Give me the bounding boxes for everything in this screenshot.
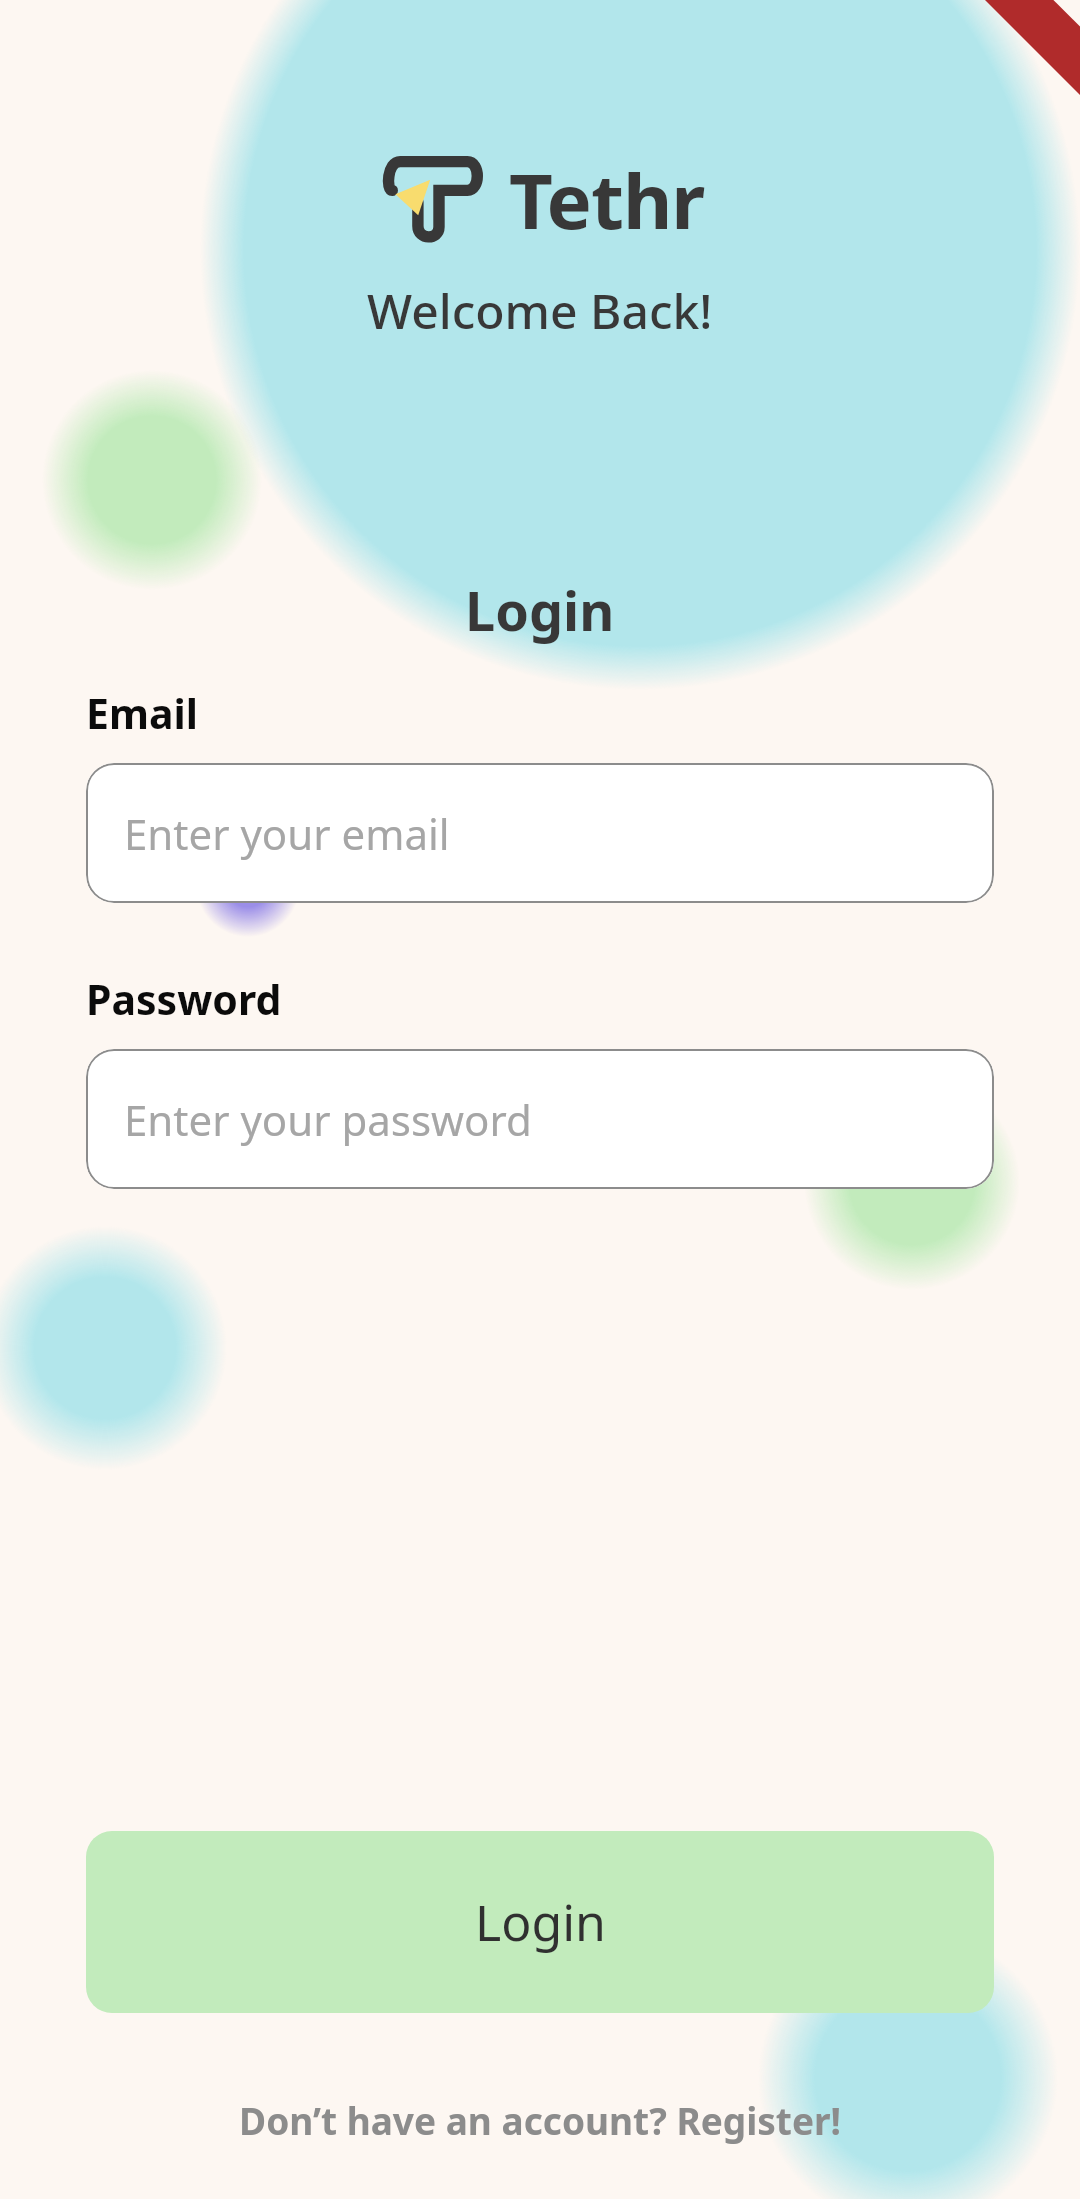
staticText: Don’t have an account? Register! [239, 2095, 841, 2145]
staticText: Enter your password [124, 1091, 532, 1148]
button[interactable]: Enter your email [86, 763, 994, 903]
staticText: Tethr [509, 148, 705, 252]
staticText: Password [86, 971, 282, 1027]
staticText: Login [465, 573, 615, 647]
staticText: Login [475, 1888, 606, 1956]
staticText: Welcome Back! [367, 278, 713, 343]
button[interactable]: Enter your password [86, 1049, 994, 1189]
button[interactable]: Login [86, 1831, 994, 2013]
staticText: Email [86, 685, 198, 741]
button[interactable]: Don’t have an account? Register! [0, 2085, 1080, 2155]
staticText: Enter your email [124, 805, 450, 862]
other: Tethr logo [375, 152, 495, 248]
